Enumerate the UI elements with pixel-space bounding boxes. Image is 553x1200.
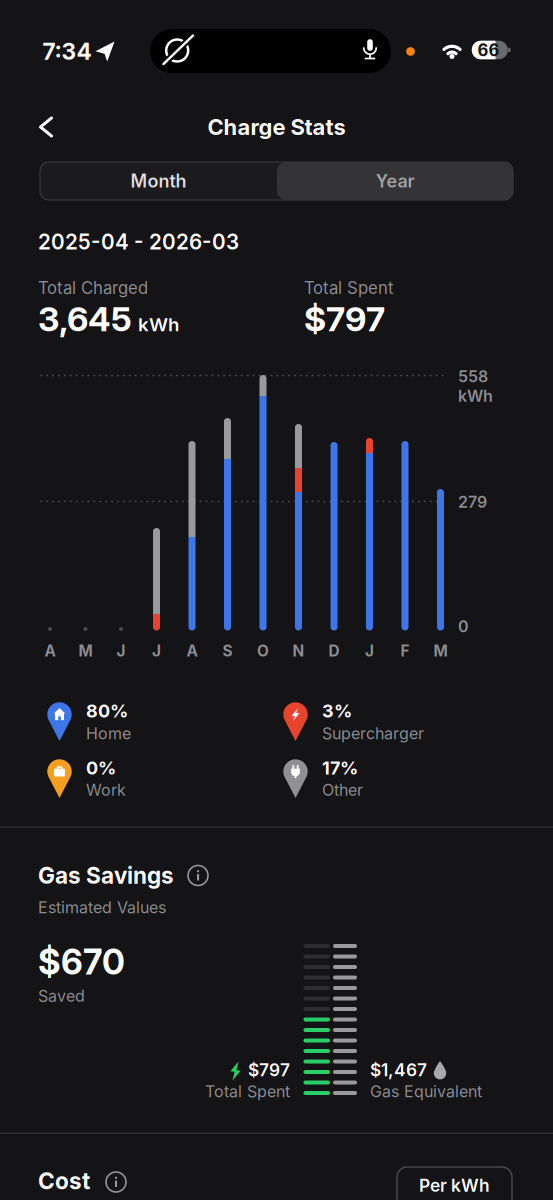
staticText: 3,645 bbox=[38, 298, 132, 339]
staticText: Total Spent bbox=[304, 278, 393, 298]
staticText: Total Charged bbox=[38, 278, 148, 298]
staticText: S bbox=[222, 642, 232, 660]
button[interactable]: Back bbox=[37, 116, 55, 138]
staticText: 7:34 bbox=[42, 38, 91, 65]
staticText: 2025-04 - 2026-03 bbox=[38, 229, 239, 254]
staticText: 558 bbox=[458, 367, 488, 386]
staticText: D bbox=[328, 642, 339, 660]
staticText: Saved bbox=[38, 986, 85, 1006]
staticText: 279 bbox=[458, 492, 487, 512]
button[interactable]: Info bbox=[188, 865, 208, 885]
staticText: $797 bbox=[304, 298, 385, 339]
button[interactable]: Month bbox=[40, 162, 276, 200]
staticText: $670 bbox=[38, 941, 125, 983]
staticText: 66 bbox=[477, 40, 499, 60]
staticText: J bbox=[152, 642, 161, 660]
staticText: $797 bbox=[248, 1059, 290, 1080]
staticText: N bbox=[292, 642, 304, 660]
button[interactable]: Per kWh bbox=[397, 1167, 512, 1200]
staticText: Total Spent bbox=[205, 1082, 290, 1101]
staticText: Per kWh bbox=[419, 1175, 490, 1196]
staticText: Home bbox=[86, 724, 131, 743]
staticText: $1,467 bbox=[370, 1059, 427, 1080]
staticText: Month bbox=[130, 170, 186, 192]
staticText: Year bbox=[375, 170, 414, 192]
staticText: 17% bbox=[322, 757, 358, 779]
staticText: Work bbox=[86, 780, 126, 800]
staticText: M bbox=[78, 642, 92, 660]
staticText: A bbox=[186, 642, 197, 660]
button[interactable]: Info bbox=[106, 1172, 126, 1192]
staticText: Other bbox=[322, 780, 363, 800]
staticText: kWh bbox=[458, 386, 493, 406]
staticText: Charge Stats bbox=[207, 114, 345, 140]
staticText: 0 bbox=[458, 617, 469, 636]
staticText: M bbox=[433, 642, 447, 660]
staticText: Estimated Values bbox=[38, 898, 166, 917]
staticText: 3% bbox=[322, 700, 352, 722]
staticText: Gas Equivalent bbox=[370, 1082, 482, 1101]
staticText: J bbox=[365, 642, 374, 660]
staticText: Cost bbox=[38, 1167, 90, 1195]
button[interactable]: Year bbox=[277, 162, 513, 200]
staticText: 80% bbox=[86, 700, 128, 722]
staticText: Gas Savings bbox=[38, 862, 174, 889]
staticText: Supercharger bbox=[322, 724, 424, 743]
staticText: F bbox=[400, 642, 409, 660]
staticText: A bbox=[44, 642, 55, 660]
staticText: kWh bbox=[138, 313, 179, 336]
staticText: 0% bbox=[86, 757, 116, 779]
staticText: O bbox=[257, 642, 269, 660]
staticText: J bbox=[116, 642, 125, 660]
